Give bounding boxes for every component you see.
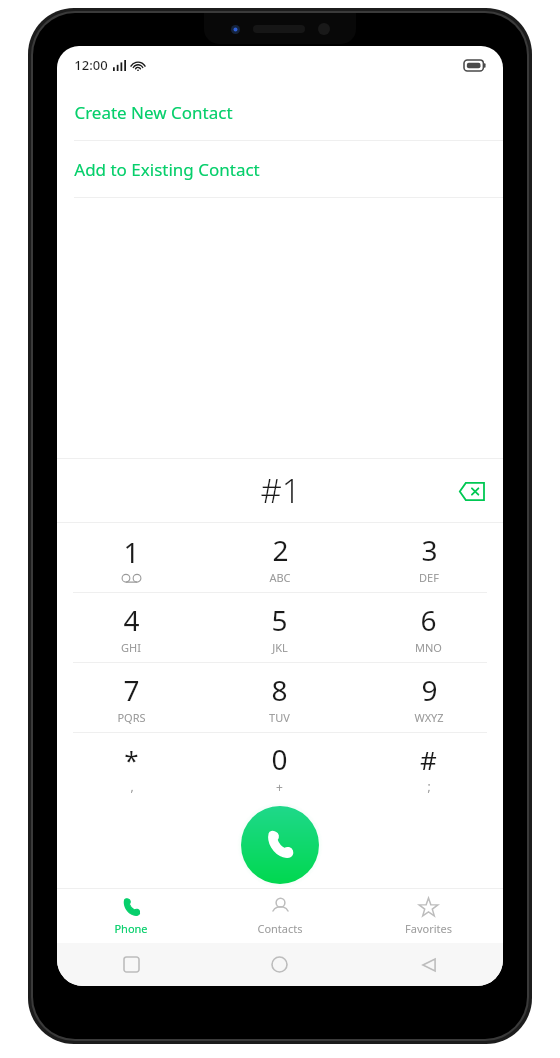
button[interactable]: Recents	[57, 943, 205, 986]
button[interactable]: 1	[57, 523, 205, 592]
staticText: 7	[123, 671, 140, 709]
button[interactable]: 5	[205, 593, 354, 662]
button[interactable]: Add to Existing Contact	[57, 141, 503, 197]
staticText: ,	[130, 778, 134, 794]
staticText: 12:00	[74, 56, 108, 74]
staticText: 5	[271, 601, 288, 639]
staticText: 1	[123, 533, 140, 571]
staticText: 8	[271, 671, 288, 709]
staticText: ;	[427, 778, 431, 794]
staticText: 2	[272, 531, 289, 569]
button[interactable]: Backspace	[447, 467, 495, 515]
button[interactable]: 6	[354, 593, 503, 662]
button[interactable]: Call	[241, 806, 319, 884]
staticText: #1	[260, 468, 301, 513]
button[interactable]: 4	[57, 593, 205, 662]
staticText: 9	[421, 671, 438, 709]
staticText: WXYZ	[414, 710, 444, 725]
button[interactable]: 2	[205, 523, 354, 592]
staticText: #	[420, 742, 437, 777]
staticText: 3	[421, 531, 438, 569]
staticText: GHI	[121, 640, 141, 655]
staticText: MNO	[415, 640, 442, 655]
button[interactable]: 3	[354, 523, 503, 592]
staticText: +	[276, 779, 283, 795]
staticText: Add to Existing Contact	[74, 158, 260, 181]
button[interactable]: Back	[354, 943, 503, 986]
staticText: 0	[271, 740, 288, 778]
button[interactable]: 0	[205, 733, 354, 802]
staticText: JKL	[272, 640, 288, 655]
button[interactable]: Home	[205, 943, 354, 986]
staticText: *	[124, 742, 139, 777]
button[interactable]: Phone	[57, 889, 205, 943]
button[interactable]: 9	[354, 663, 503, 732]
staticText: 6	[420, 601, 437, 639]
button[interactable]: Favorites	[354, 889, 503, 943]
button[interactable]: #	[354, 733, 503, 802]
staticText: Phone	[114, 921, 148, 936]
staticText: Contacts	[257, 921, 303, 936]
button[interactable]: 7	[57, 663, 205, 732]
staticText: TUV	[269, 710, 290, 725]
staticText: 4	[123, 601, 140, 639]
staticText: ABC	[269, 570, 291, 585]
button[interactable]: Contacts	[205, 889, 354, 943]
staticText: Create New Contact	[74, 101, 233, 124]
button[interactable]: Create New Contact	[57, 84, 503, 140]
staticText: Favorites	[405, 921, 452, 936]
button[interactable]: *	[57, 733, 205, 802]
staticText: PQRS	[117, 710, 146, 725]
button[interactable]: 8	[205, 663, 354, 732]
staticText: DEF	[419, 570, 439, 585]
